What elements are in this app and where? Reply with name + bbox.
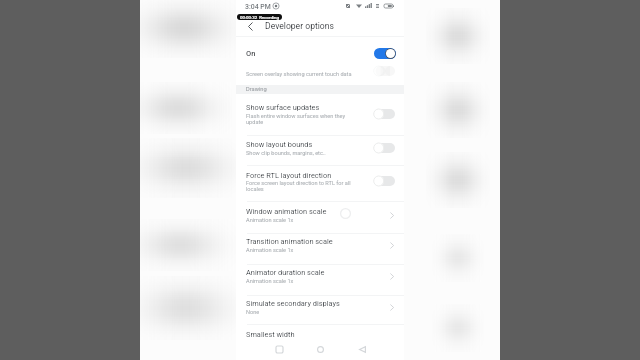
staticText: Animation scale 1x [246,217,294,224]
staticText: Transition animation scale [246,237,333,246]
staticText: Show surface updates [246,103,320,112]
staticText: Drawing [246,86,267,93]
staticText: Animation scale 1x [246,278,294,285]
staticText: Animation scale 1x [246,247,294,254]
button[interactable]: Open [383,208,398,222]
button[interactable]: Open [383,269,398,283]
staticText: Window animation scale [246,207,327,216]
button[interactable]: Open [383,238,398,252]
staticText: Developer options [265,21,334,31]
staticText: Animator duration scale [246,268,325,277]
staticText: Force screen layout direction to RTL for… [246,180,351,187]
button[interactable]: Toggle off [368,173,397,189]
button[interactable]: Recents [271,341,287,357]
staticText: Show layout bounds [246,140,313,149]
staticText: Flash entire window surfaces when they [246,113,346,120]
staticText: Smallest width [246,330,295,339]
button[interactable]: Back [242,18,258,34]
button[interactable]: Toggle off [368,140,397,156]
staticText: 00:00:32 Recording [240,15,279,20]
staticText: Screen overlay showing current touch dat… [246,71,352,78]
staticText: Simulate secondary displays [246,299,340,308]
button[interactable]: Toggle on [369,45,397,61]
button[interactable]: Home [312,341,328,357]
staticText: 3:04 PM [245,3,271,11]
staticText: update [246,119,264,126]
button[interactable]: Toggle off [368,106,397,122]
button[interactable]: Toggle off [368,63,397,79]
staticText: Force RTL layout direction [246,171,332,180]
button[interactable]: Open [383,300,398,314]
staticText: Show clip bounds, margins, etc.. [246,150,326,157]
staticText: None [246,309,260,316]
staticText: locales [246,186,264,193]
staticText: On [246,49,256,58]
button[interactable]: Back [354,341,370,357]
